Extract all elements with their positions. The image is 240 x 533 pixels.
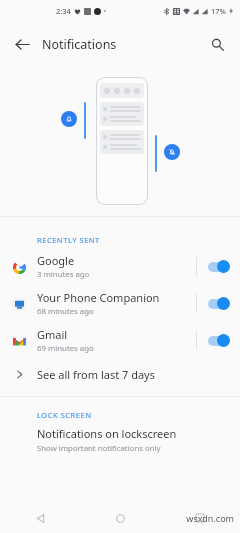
- staticText: RECENTLY SENT: [37, 235, 100, 245]
- staticText: 68 minutes ago: [37, 306, 94, 317]
- staticText: LOCK SCREEN: [37, 410, 92, 420]
- staticText: 2:34: [56, 6, 71, 16]
- button[interactable]: Home: [80, 503, 160, 533]
- staticText: wsxdn.com: [186, 512, 234, 524]
- staticText: Google: [37, 253, 75, 268]
- button[interactable]: Google: [0, 248, 240, 285]
- button[interactable]: Search: [202, 29, 232, 59]
- button[interactable]: Recent apps: [160, 503, 240, 533]
- button[interactable]: Notifications on lockscreen: [0, 423, 240, 460]
- button[interactable]: Gmail: [0, 322, 240, 359]
- staticText: 69 minutes ago: [37, 343, 94, 354]
- button[interactable]: Toggle Your Phone Companion notification…: [207, 297, 230, 310]
- staticText: Show important notifications only: [37, 443, 161, 454]
- button[interactable]: Toggle Google notifications: [207, 260, 230, 273]
- staticText: 3 minutes ago: [37, 269, 90, 280]
- staticText: Gmail: [37, 327, 68, 342]
- staticText: Notifications on lockscreen: [37, 426, 177, 441]
- staticText: See all from last 7 days: [37, 367, 155, 382]
- button[interactable]: See all from last 7 days: [0, 359, 240, 389]
- staticText: Your Phone Companion: [37, 290, 160, 305]
- button[interactable]: Back: [0, 503, 80, 533]
- button[interactable]: Toggle Gmail notifications: [207, 334, 230, 347]
- button[interactable]: Your Phone Companion: [0, 285, 240, 322]
- button[interactable]: Back: [6, 28, 38, 60]
- staticText: 17%: [211, 6, 226, 16]
- staticText: Notifications: [42, 36, 117, 53]
